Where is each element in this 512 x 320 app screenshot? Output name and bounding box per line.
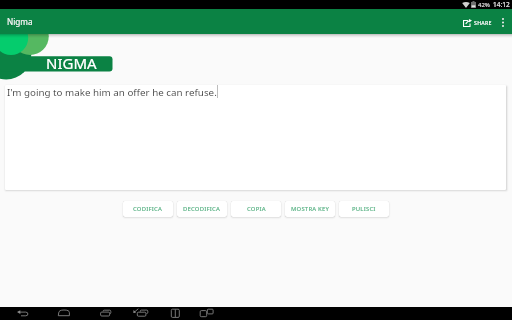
button[interactable]: Home	[56, 307, 72, 320]
staticText: I'm going to make him an offer he can re…	[7, 86, 217, 99]
staticText: NIGMA	[46, 53, 97, 73]
button[interactable]: Freeform window	[138, 307, 154, 320]
button[interactable]: More options	[493, 9, 512, 34]
staticText: CODIFICA	[133, 205, 163, 213]
button[interactable]: Back	[14, 307, 30, 320]
button[interactable]: Picture in picture	[213, 307, 229, 320]
staticText: PULISCI	[352, 205, 376, 213]
button[interactable]: MOSTRA KEY	[285, 201, 335, 217]
staticText: SHARE	[474, 19, 492, 26]
button[interactable]: Recent apps	[98, 307, 114, 320]
staticText: 14:12	[493, 0, 510, 9]
staticText: Nigma	[7, 16, 33, 27]
button[interactable]: COPIA	[231, 201, 281, 217]
button[interactable]: SHARE	[461, 9, 493, 34]
staticText: COPIA	[247, 205, 266, 213]
staticText: 42%	[478, 1, 490, 9]
button[interactable]: DECODIFICA	[177, 201, 227, 217]
staticText: DECODIFICA	[183, 205, 221, 213]
button[interactable]: Split screen	[176, 307, 192, 320]
button[interactable]: PULISCI	[339, 201, 389, 217]
staticText: MOSTRA KEY	[291, 205, 330, 213]
button[interactable]: CODIFICA	[123, 201, 173, 217]
